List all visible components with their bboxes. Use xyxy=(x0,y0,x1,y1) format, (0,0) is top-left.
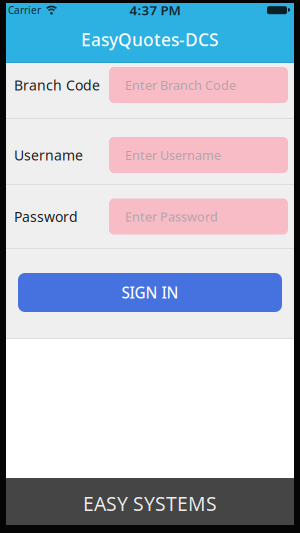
button[interactable]: Enter Username xyxy=(109,137,288,173)
staticText: EasyQuotes-DCS xyxy=(81,28,219,51)
staticText: Enter Username xyxy=(125,146,221,164)
staticText: Carrier xyxy=(8,3,41,17)
staticText: Password xyxy=(14,207,78,226)
staticText: Branch Code xyxy=(14,75,100,95)
button[interactable]: Enter Password xyxy=(109,198,288,234)
staticText: SIGN IN xyxy=(121,282,178,303)
staticText: Enter Password xyxy=(125,208,218,225)
staticText: EASY SYSTEMS xyxy=(83,490,217,517)
staticText: Enter Branch Code xyxy=(125,76,236,94)
staticText: 4:37 PM xyxy=(129,1,180,19)
button[interactable]: Enter Branch Code xyxy=(109,67,288,103)
button[interactable]: SIGN IN xyxy=(18,273,282,312)
staticText: Username xyxy=(14,145,83,165)
